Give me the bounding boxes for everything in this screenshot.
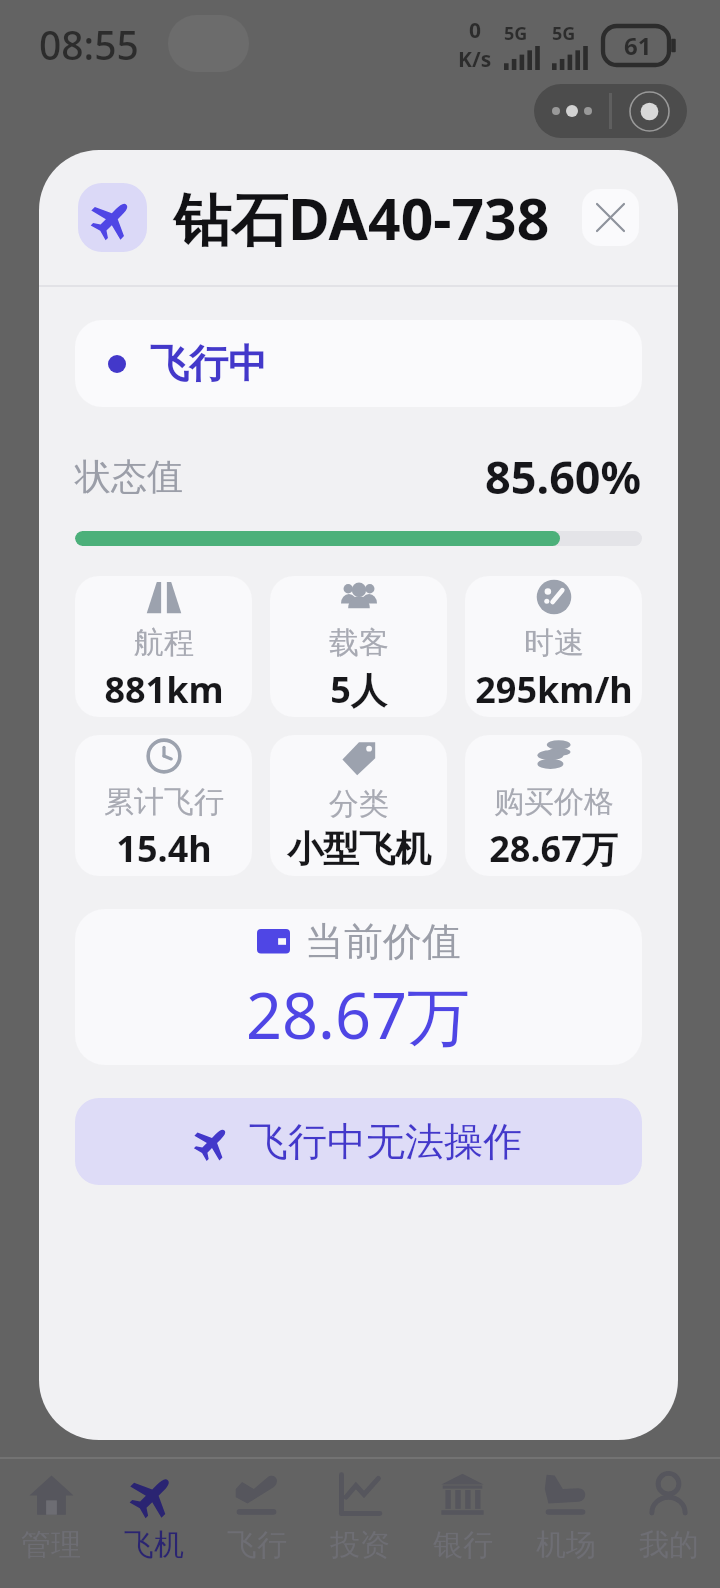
staticText: 航程 [134, 624, 194, 662]
button[interactable]: 航程 [75, 576, 252, 717]
staticText: 5人 [330, 665, 387, 714]
button[interactable]: 载客 [270, 576, 447, 717]
staticText: 分类 [329, 785, 389, 823]
staticText: 我的 [639, 1526, 699, 1564]
button[interactable]: 飞行中 [75, 320, 642, 407]
staticText: 15.4h [116, 824, 212, 873]
staticText: 累计飞行 [104, 783, 224, 821]
staticText: 28.67万 [489, 824, 618, 873]
staticText: 机场 [536, 1526, 596, 1564]
button[interactable]: 当前价值 [75, 909, 642, 1065]
staticText: 5G [552, 21, 576, 46]
staticText: K/s [458, 45, 492, 74]
button[interactable]: Record [612, 84, 687, 138]
staticText: 08:55 [39, 18, 139, 71]
button[interactable]: 购买价格 [465, 735, 642, 876]
staticText: 银行 [433, 1526, 493, 1564]
staticText: 飞行中 [150, 339, 267, 388]
staticText: 当前价值 [305, 917, 461, 966]
button[interactable]: 飞机 [102, 1459, 205, 1576]
button[interactable]: 分类 [270, 735, 447, 876]
button[interactable]: 银行 [411, 1459, 514, 1576]
button[interactable]: More options [534, 84, 609, 138]
staticText: 小型飞机 [287, 826, 431, 871]
staticText: 28.67万 [246, 972, 471, 1058]
staticText: 钻石DA40-738 [174, 179, 550, 257]
staticText: 载客 [329, 624, 389, 662]
button[interactable]: Close [582, 189, 639, 246]
button[interactable]: 时速 [465, 576, 642, 717]
staticText: 881km [104, 665, 224, 714]
staticText: 295km/h [475, 665, 633, 714]
staticText: 0 [469, 16, 482, 45]
button[interactable]: 投资 [308, 1459, 411, 1576]
staticText: 5G [504, 21, 528, 46]
button[interactable]: 飞行中无法操作 [75, 1098, 642, 1185]
button[interactable]: 累计飞行 [75, 735, 252, 876]
button[interactable]: 飞行 [205, 1459, 308, 1576]
staticText: 飞行 [227, 1526, 287, 1564]
staticText: 61 [624, 29, 652, 62]
staticText: 状态值 [75, 454, 183, 499]
button[interactable]: 我的 [617, 1459, 720, 1576]
staticText: 飞行中无法操作 [249, 1117, 522, 1166]
staticText: 时速 [524, 624, 584, 662]
staticText: 管理 [21, 1526, 81, 1564]
staticText: 购买价格 [494, 783, 614, 821]
staticText: 85.60% [485, 446, 642, 507]
staticText: 投资 [330, 1526, 390, 1564]
button[interactable]: 管理 [0, 1459, 102, 1576]
button[interactable]: 机场 [514, 1459, 617, 1576]
staticText: 飞机 [124, 1526, 184, 1564]
